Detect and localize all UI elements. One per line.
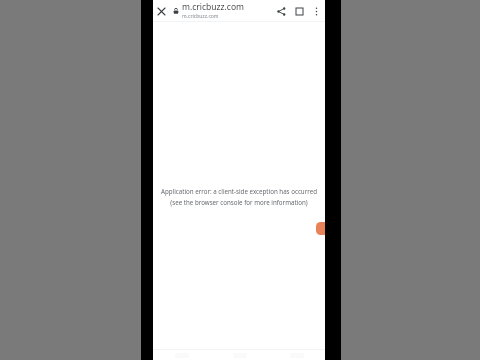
staticText: m.cricbuzz.com [182,1,245,13]
button[interactable]: Share [272,2,290,20]
button[interactable]: Close [153,3,169,19]
button[interactable]: Bookmark [290,2,308,20]
button[interactable]: More options [308,3,324,19]
button[interactable]: Feedback [316,222,325,235]
staticText: Application error: a client-side excepti… [161,187,317,195]
staticText: m.cricbuzz.com [182,13,219,20]
staticText: (see the browser console for more inform… [170,198,308,206]
